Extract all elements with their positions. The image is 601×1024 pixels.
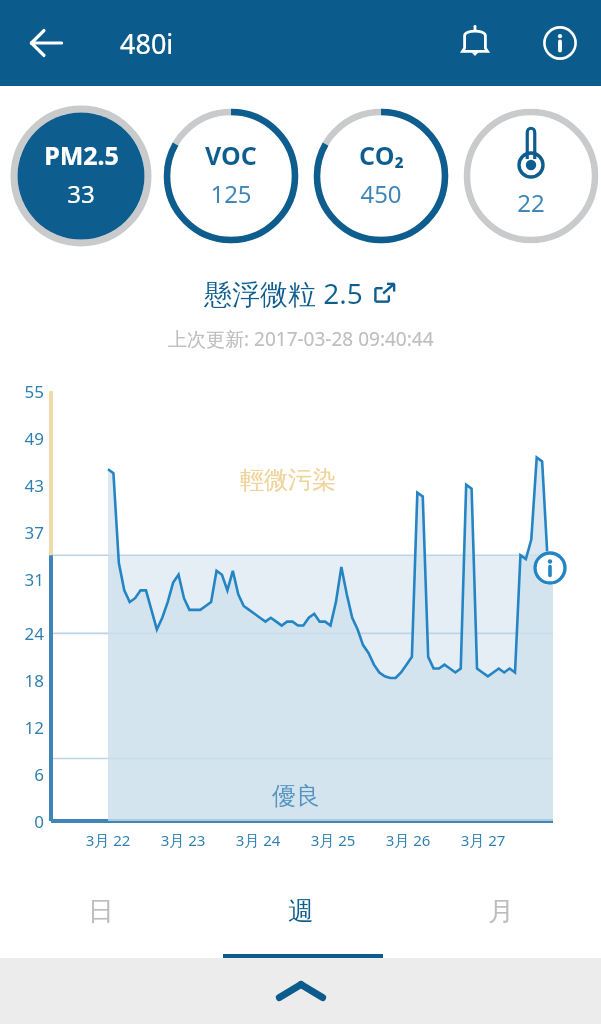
button[interactable]: Information <box>534 17 586 69</box>
button[interactable]: CO₂ <box>321 138 441 210</box>
button[interactable]: Notifications <box>449 17 501 69</box>
staticText: 12 <box>4 716 44 739</box>
staticText: 33 <box>67 177 95 210</box>
button[interactable]: Back <box>20 17 72 69</box>
staticText: 43 <box>4 474 44 497</box>
staticText: 480i <box>120 25 174 62</box>
staticText: 週 <box>288 895 314 928</box>
staticText: VOC <box>205 138 257 172</box>
staticText: 輕微污染 <box>240 465 336 495</box>
staticText: 24 <box>4 622 44 645</box>
staticText: 22 <box>501 186 561 219</box>
staticText: CO₂ <box>359 138 404 172</box>
staticText: 6 <box>4 763 44 786</box>
staticText: 3月 27 <box>443 830 523 850</box>
button[interactable]: 懸浮微粒 2.5 <box>204 274 397 312</box>
staticText: 49 <box>4 427 44 450</box>
button[interactable]: 日 <box>0 880 201 958</box>
button[interactable]: 月 <box>401 880 601 958</box>
staticText: 37 <box>4 521 44 544</box>
button[interactable]: Expand <box>0 958 601 1024</box>
staticText: 月 <box>488 895 514 928</box>
button[interactable]: PM2.5 <box>21 138 141 210</box>
staticText: 0 <box>4 810 44 833</box>
staticText: 18 <box>4 669 44 692</box>
staticText: 日 <box>88 895 114 928</box>
staticText: 3月 22 <box>68 830 148 850</box>
button[interactable]: VOC <box>171 138 291 210</box>
staticText: 125 <box>210 177 252 210</box>
staticText: 3月 25 <box>293 830 373 850</box>
staticText: 上次更新: 2017-03-28 09:40:44 <box>168 326 434 352</box>
staticText: 55 <box>4 380 44 403</box>
staticText: PM2.5 <box>44 138 119 172</box>
staticText: 3月 26 <box>368 830 448 850</box>
staticText: 優良 <box>272 781 320 811</box>
staticText: 3月 23 <box>143 830 223 850</box>
staticText: 450 <box>360 177 402 210</box>
staticText: 懸浮微粒 2.5 <box>204 274 363 312</box>
staticText: 31 <box>4 568 44 591</box>
staticText: 3月 24 <box>218 830 298 850</box>
button[interactable]: 週 <box>201 880 401 958</box>
